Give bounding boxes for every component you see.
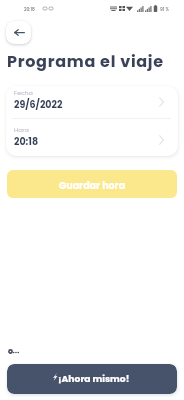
- button[interactable]: Fecha: [6, 86, 178, 118]
- staticText: Programa el viaje: [7, 50, 164, 72]
- button[interactable]: Back: [6, 21, 31, 44]
- staticText: 20:18: [14, 135, 39, 148]
- staticText: 91 %: [160, 6, 169, 12]
- staticText: ¡Ahora mismo!: [58, 372, 130, 385]
- button[interactable]: Hora: [6, 123, 178, 156]
- staticText: Guardar hora: [59, 179, 126, 192]
- staticText: Hora: [14, 126, 29, 134]
- staticText: Fecha: [14, 89, 34, 97]
- staticText: 20:18: [24, 6, 35, 12]
- button[interactable]: Guardar hora: [7, 170, 177, 198]
- button[interactable]: ¡Ahora mismo!: [7, 364, 177, 394]
- staticText: 29/6/2022: [14, 98, 63, 111]
